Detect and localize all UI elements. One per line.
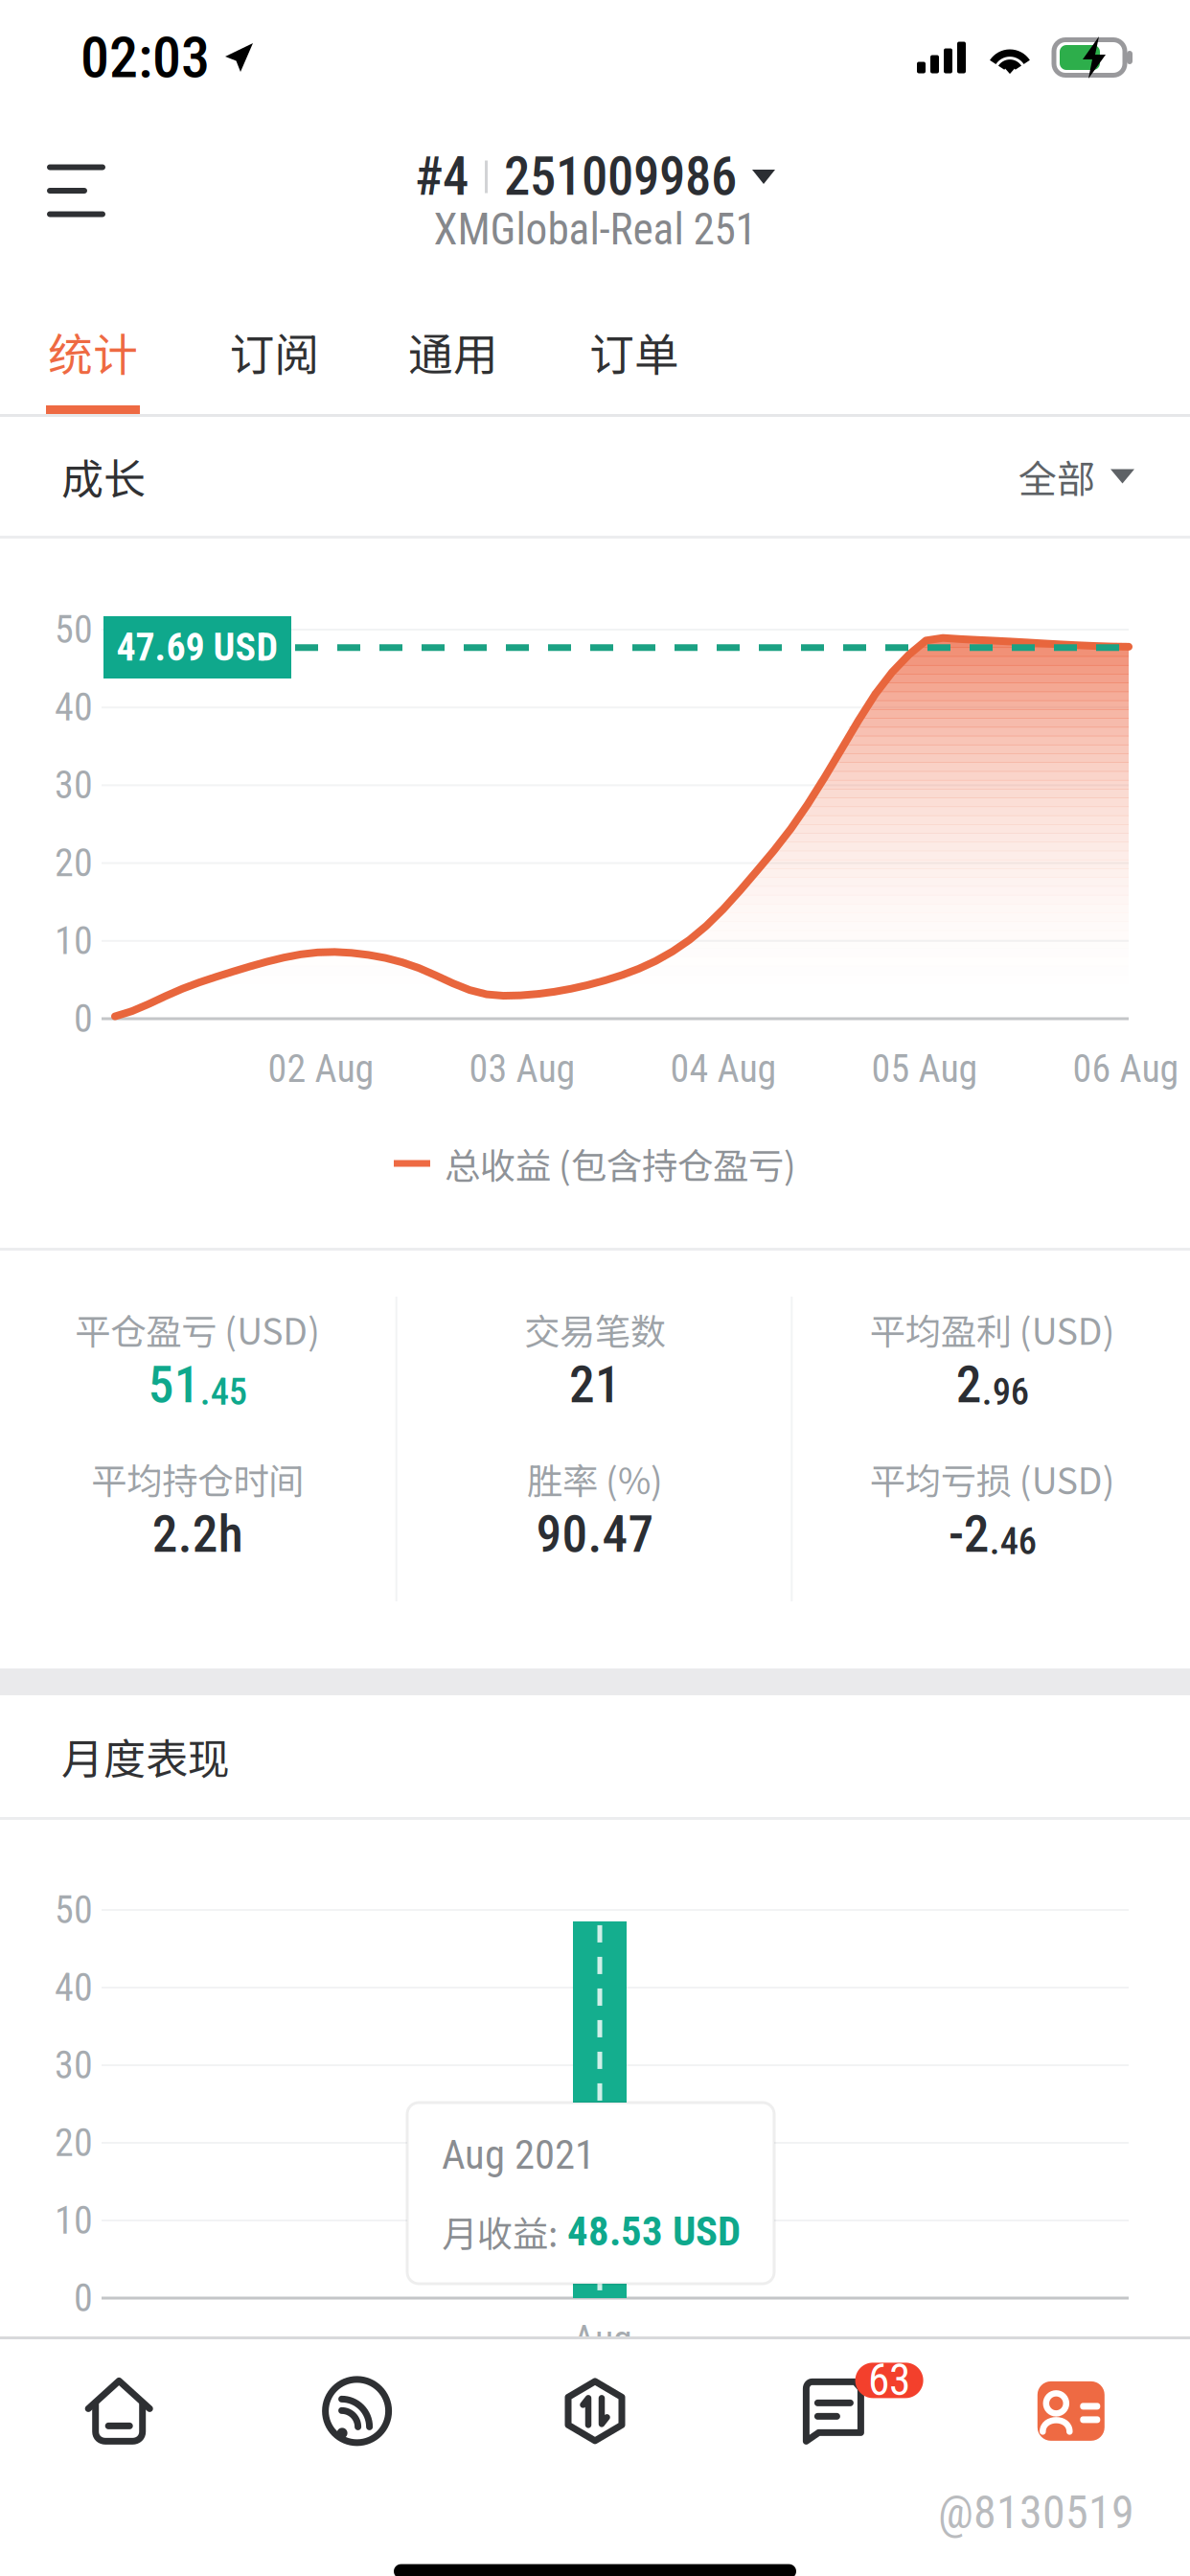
- button[interactable]: 消息: [714, 2358, 952, 2464]
- button[interactable]: 信号: [238, 2358, 476, 2464]
- button[interactable]: 统计: [0, 266, 186, 414]
- staticText: 订单: [589, 319, 679, 384]
- staticText: -2: [948, 1504, 989, 1564]
- staticText: 02 Aug: [268, 1046, 374, 1091]
- staticText: #4: [415, 146, 469, 208]
- button[interactable]: 订阅: [186, 266, 363, 414]
- staticText: 统计: [48, 319, 138, 384]
- button[interactable]: 订单: [543, 266, 725, 414]
- staticText: 总收益 (包含持仓盈亏): [445, 1138, 796, 1189]
- staticText: 20: [55, 2120, 93, 2165]
- staticText: 21: [569, 1355, 621, 1415]
- staticText: 40: [55, 685, 93, 730]
- button[interactable]: 交易: [476, 2358, 714, 2464]
- button[interactable]: 全部: [1018, 449, 1134, 503]
- staticText: 47.69 USD: [116, 625, 278, 670]
- staticText: 06 Aug: [1073, 1046, 1179, 1091]
- staticText: 成长: [61, 446, 146, 507]
- button[interactable]: #4: [415, 150, 775, 204]
- staticText: 0: [74, 996, 93, 1041]
- staticText: .46: [989, 1520, 1036, 1563]
- staticText: 平仓盈亏 (USD): [75, 1303, 320, 1355]
- button[interactable]: 我的: [952, 2358, 1190, 2464]
- staticText: 10: [55, 2198, 93, 2243]
- staticText: 03 Aug: [469, 1046, 575, 1091]
- staticText: 平均持仓时间: [91, 1453, 304, 1505]
- staticText: 胜率 (%): [527, 1453, 663, 1505]
- staticText: 0: [74, 2276, 93, 2321]
- staticText: 平均盈利 (USD): [870, 1303, 1115, 1355]
- staticText: 30: [55, 763, 93, 808]
- staticText: 90.47: [536, 1504, 654, 1564]
- staticText: Aug: [573, 2317, 632, 2362]
- staticText: 04 Aug: [670, 1046, 777, 1091]
- staticText: 月收益:: [442, 2206, 558, 2257]
- button[interactable]: 通用: [363, 266, 543, 414]
- staticText: 30: [55, 2043, 93, 2088]
- button[interactable]: Menu: [0, 133, 156, 248]
- staticText: 通用: [408, 319, 498, 384]
- staticText: 251009986: [504, 146, 737, 208]
- staticText: 20: [55, 841, 93, 886]
- staticText: 63: [868, 2355, 910, 2406]
- staticText: XMGlobal-Real 251: [434, 204, 756, 255]
- staticText: 交易笔数: [524, 1303, 666, 1355]
- staticText: .45: [200, 1370, 247, 1414]
- staticText: 50: [55, 1888, 93, 1932]
- staticText: .96: [982, 1370, 1029, 1414]
- staticText: @8130519: [938, 2485, 1134, 2539]
- staticText: 50: [55, 607, 93, 652]
- staticText: 48.53 USD: [558, 2208, 741, 2255]
- staticText: 订阅: [229, 319, 320, 384]
- button[interactable]: 首页: [0, 2358, 238, 2464]
- staticText: 10: [55, 918, 93, 963]
- staticText: 2: [956, 1355, 982, 1415]
- staticText: 月度表现: [61, 1726, 230, 1787]
- staticText: 全部: [1018, 448, 1095, 504]
- staticText: 2.2h: [152, 1504, 243, 1564]
- staticText: 40: [55, 1965, 93, 2010]
- staticText: 02:03: [80, 24, 210, 91]
- staticText: 51: [148, 1355, 200, 1415]
- staticText: 平均亏损 (USD): [870, 1453, 1115, 1505]
- staticText: 05 Aug: [871, 1046, 978, 1091]
- staticText: Aug 2021: [442, 2131, 595, 2179]
